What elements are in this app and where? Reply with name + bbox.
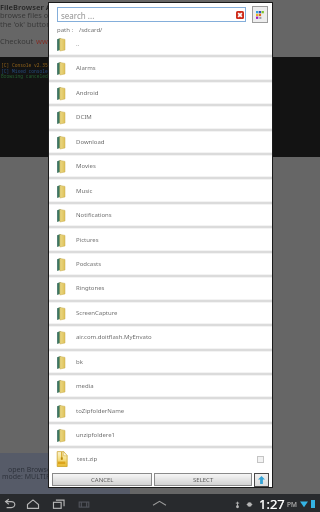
button[interactable]: Podcasts	[49, 252, 272, 276]
button[interactable]: search ...	[57, 7, 246, 22]
staticText: toZipfolderName	[76, 407, 125, 415]
staticText: open Browser	[8, 465, 54, 475]
button[interactable]: toZipfolderName	[49, 399, 272, 423]
staticText: Podcasts	[76, 260, 102, 268]
staticText: search ...	[61, 10, 95, 21]
staticText: browse files on your device, when you cl…	[0, 10, 151, 20]
staticText: test.zip	[77, 455, 98, 463]
button[interactable]: Up one level	[255, 474, 268, 486]
button[interactable]: Alarms	[49, 56, 272, 80]
staticText: ..	[76, 40, 80, 48]
staticText: [C] Console v2.35, Macromedia Inc. ; [CC…	[1, 62, 134, 68]
staticText: SELECT	[193, 476, 214, 484]
button[interactable]: Music	[49, 179, 272, 203]
staticText: Browsing canceled	[1, 73, 48, 79]
button[interactable]: bk	[49, 350, 272, 374]
button[interactable]: Android	[49, 81, 272, 105]
staticText: Checkout	[0, 36, 36, 46]
staticText: air.com.doitflash.MyEnvato	[76, 333, 152, 341]
staticText: media	[76, 382, 94, 390]
button[interactable]: Pictures	[49, 228, 272, 252]
button[interactable]: SELECT	[155, 474, 251, 485]
button[interactable]: Movies	[49, 154, 272, 178]
button[interactable]: Ringtones	[49, 276, 272, 300]
button[interactable]: air.com.doitflash.MyEnvato	[49, 325, 272, 349]
staticText: Music	[76, 187, 93, 195]
staticText: Ringtones	[76, 284, 105, 292]
button[interactable]: Download	[49, 130, 272, 154]
button[interactable]: media	[49, 374, 272, 398]
button[interactable]: Screenshot	[77, 497, 91, 511]
staticText: path :	[57, 26, 74, 34]
staticText: 1:27	[259, 495, 285, 512]
staticText: the 'ok' button it returns to your AS3 p…	[0, 19, 155, 29]
staticText: CANCEL	[91, 476, 114, 484]
staticText: Android	[76, 89, 99, 97]
staticText: Notifications	[76, 211, 112, 219]
staticText: Alarms	[76, 64, 96, 72]
staticText: PM	[287, 500, 297, 509]
button[interactable]: Clear search	[236, 11, 244, 19]
staticText: DCIM	[76, 113, 92, 121]
button[interactable]: test.zip	[49, 447, 272, 471]
button[interactable]: Notifications	[49, 203, 272, 227]
staticText: www.doitflash.com	[36, 36, 104, 46]
button[interactable]: ..	[49, 32, 272, 56]
staticText: ScreenCapture	[76, 309, 118, 317]
button[interactable]: Home	[26, 497, 40, 511]
button[interactable]: Recents	[52, 497, 66, 511]
staticText: unzipfoldere1	[76, 431, 115, 439]
button[interactable]: Back	[3, 497, 17, 511]
button[interactable]: CANCEL	[53, 474, 151, 485]
button[interactable]: DCIM	[49, 105, 272, 129]
button[interactable]: Apps	[253, 7, 267, 22]
staticText: [C] Mixed console on	[1, 68, 57, 74]
button[interactable]: unzipfoldere1	[49, 423, 272, 447]
staticText: mode: MULTIPLE	[2, 472, 58, 482]
staticText: FileBrowser ANE, so you can easily	[0, 2, 129, 12]
staticText: /sdcard/	[79, 26, 103, 34]
staticText: bk	[76, 358, 83, 366]
button[interactable]: ScreenCapture	[49, 301, 272, 325]
staticText: Download	[76, 138, 105, 146]
button[interactable]: Expand notifications	[151, 498, 168, 509]
staticText: Movies	[76, 162, 96, 170]
staticText: Pictures	[76, 236, 99, 244]
